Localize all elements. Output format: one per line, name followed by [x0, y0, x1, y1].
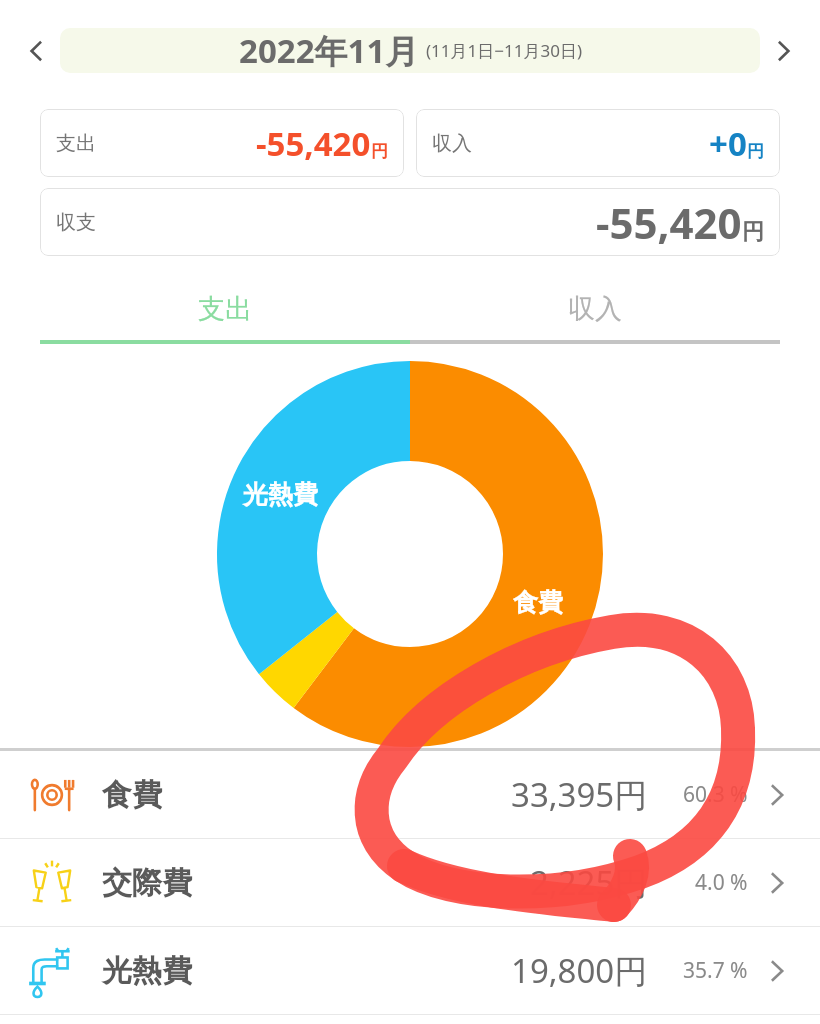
- staticText: 収入: [568, 292, 622, 326]
- button[interactable]: 収入: [410, 286, 780, 332]
- staticText: 4.0 %: [695, 868, 748, 897]
- button[interactable]: 支出: [56, 109, 388, 177]
- staticText: 2022年11月: [239, 28, 419, 73]
- staticText: 支出: [198, 292, 252, 326]
- staticText: 19,800円: [511, 948, 648, 993]
- button[interactable]: 食費: [0, 751, 820, 838]
- button[interactable]: Next month: [762, 29, 806, 73]
- staticText: 円: [371, 141, 388, 162]
- staticText: +0: [709, 121, 747, 166]
- staticText: 円: [747, 141, 764, 162]
- staticText: 交際費: [102, 864, 192, 902]
- button[interactable]: 光熱費: [0, 927, 820, 1014]
- staticText: -55,420: [256, 121, 371, 166]
- button[interactable]: 交際費: [0, 839, 820, 926]
- button[interactable]: Previous month: [14, 29, 58, 73]
- staticText: 35.7 %: [683, 956, 748, 985]
- staticText: (11月1日−11月30日): [426, 39, 582, 62]
- staticText: 33,395円: [511, 772, 648, 817]
- staticText: 円: [742, 218, 764, 246]
- staticText: 支出: [56, 131, 96, 156]
- staticText: -55,420: [596, 194, 742, 251]
- button[interactable]: 2022年11月: [60, 28, 760, 73]
- staticText: 収支: [56, 210, 96, 235]
- staticText: 2,225円: [530, 860, 648, 905]
- staticText: 光熱費: [102, 952, 192, 990]
- button[interactable]: 収入: [432, 109, 764, 177]
- staticText: 光熱費: [243, 479, 318, 510]
- staticText: 収入: [432, 131, 472, 156]
- button[interactable]: 支出: [40, 286, 410, 332]
- button[interactable]: 収支: [56, 188, 764, 256]
- staticText: 60.3 %: [683, 780, 748, 809]
- staticText: 食費: [102, 776, 162, 814]
- staticText: 食費: [513, 587, 563, 618]
